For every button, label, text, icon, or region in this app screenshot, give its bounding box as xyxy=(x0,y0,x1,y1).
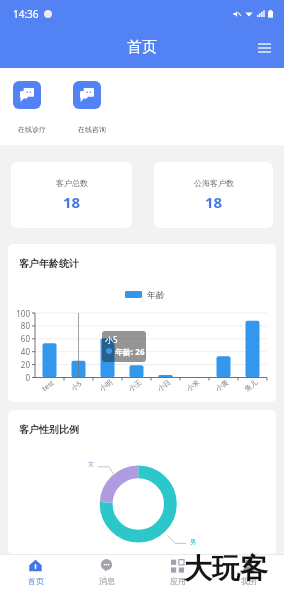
staticText: 0 xyxy=(8,372,30,383)
staticText: 消息 xyxy=(99,576,115,586)
staticText: 小日 xyxy=(156,378,172,393)
staticText: 小王 xyxy=(127,378,143,393)
button[interactable]: 消息 xyxy=(71,555,142,600)
staticText: 男 xyxy=(190,538,196,546)
staticText: 40 xyxy=(8,346,30,357)
staticText: 女 xyxy=(88,460,94,468)
staticText: 60 xyxy=(8,333,30,344)
staticText: 客户年龄统计 xyxy=(19,257,79,270)
staticText: 14:36 xyxy=(13,7,39,21)
staticText: 年龄: 26 xyxy=(115,346,145,357)
staticText: 首页 xyxy=(28,576,44,586)
staticText: 在线咨询 xyxy=(72,125,112,134)
button[interactable]: 我的 xyxy=(213,555,284,600)
button[interactable]: 公海客户数 xyxy=(154,162,273,228)
staticText: 80 xyxy=(8,320,30,331)
button[interactable]: 在线诊疗 xyxy=(7,81,47,109)
button[interactable]: 客户总数 xyxy=(11,162,132,228)
staticText: 我的 xyxy=(241,576,257,586)
staticText: 18 xyxy=(205,192,223,212)
button[interactable]: Menu xyxy=(252,36,276,60)
staticText: 小5 xyxy=(69,378,85,394)
staticText: 鱼儿 xyxy=(243,378,259,393)
staticText: 小5 xyxy=(105,334,118,345)
staticText: 年龄 xyxy=(147,289,165,300)
staticText: 20 xyxy=(8,359,30,370)
staticText: 客户总数 xyxy=(56,178,88,188)
staticText: 18 xyxy=(63,192,81,212)
staticText: 小明 xyxy=(98,378,114,393)
staticText: 公海客户数 xyxy=(194,178,234,188)
button[interactable]: 首页 xyxy=(0,555,71,600)
staticText: 首页 xyxy=(127,38,157,57)
staticText: 小米 xyxy=(185,378,201,393)
staticText: 小黄 xyxy=(214,378,230,393)
staticText: test xyxy=(40,378,57,394)
button[interactable]: 在线咨询 xyxy=(67,81,107,109)
staticText: 大玩客 xyxy=(184,551,268,586)
staticText: 应用 xyxy=(170,576,186,586)
staticText: 100 xyxy=(8,308,30,319)
button[interactable]: 应用 xyxy=(142,555,213,600)
staticText: 客户性别比例 xyxy=(19,423,79,436)
staticText: 在线诊疗 xyxy=(12,125,52,134)
